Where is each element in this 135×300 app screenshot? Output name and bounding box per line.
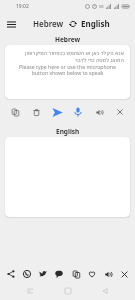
button[interactable]: Hebrew [31,16,66,31]
staticText: Hebrew [55,35,81,44]
button[interactable]: אנא הקלד כאן או השתמש בכפתור המיקרופון ה… [5,45,130,99]
button[interactable]: Menu [3,16,19,32]
button[interactable]: Swap languages [66,17,79,30]
staticText: 58 [99,4,104,9]
button[interactable]: Share [4,267,18,281]
button[interactable]: Listen [101,267,115,281]
button[interactable]: Translate [49,104,65,120]
button[interactable]: Message [52,267,66,281]
button[interactable]: English [79,16,112,31]
button[interactable]: Twitter [36,267,50,281]
staticText: English [56,127,80,136]
staticText: Please type here or use the microphone b… [11,63,124,77]
button[interactable]: Back [98,284,112,298]
staticText: Hebrew [33,18,64,29]
button[interactable]: WhatsApp [20,267,34,281]
button[interactable]: Favorite [85,267,99,281]
staticText: 19:02 [16,3,29,10]
staticText: אנא הקלד כאן או השתמש בכפתור המיקרופון ה… [11,49,124,63]
button[interactable]: Close [117,267,131,281]
button[interactable]: Copy [7,104,23,120]
button[interactable]: Speak [70,104,86,120]
button[interactable]: Close [112,104,128,120]
button[interactable]: Copy [69,267,83,281]
button[interactable]: Listen [91,104,107,120]
button[interactable]: Clear [28,104,44,120]
button[interactable]: Recents [23,284,37,298]
button[interactable]: Home [61,284,75,298]
staticText: English [81,18,110,29]
